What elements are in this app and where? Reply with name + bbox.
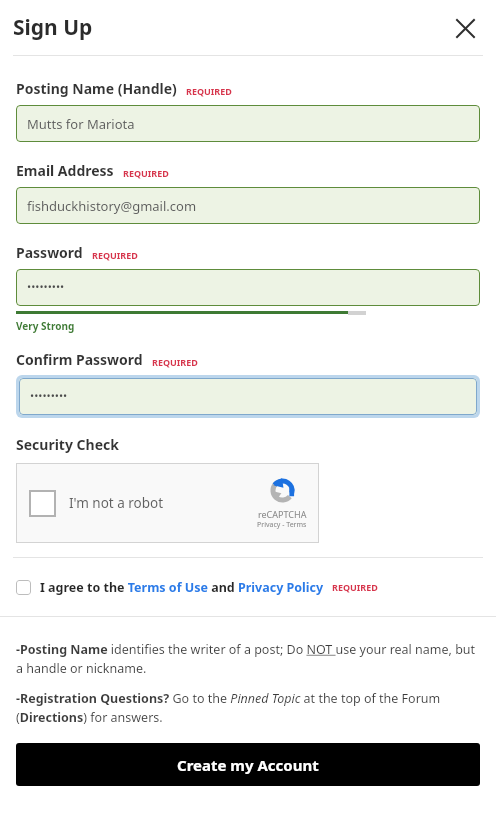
- button[interactable]: Create my Account: [16, 743, 480, 786]
- staticText: Create my Account: [177, 755, 319, 775]
- button[interactable]: Close: [447, 10, 483, 46]
- staticText: Email Address: [16, 161, 114, 180]
- staticText: -Registration Questions? Go to the Pinne…: [16, 690, 480, 726]
- staticText: Posting Name (Handle): [16, 79, 177, 98]
- staticText: •••••••••: [30, 388, 68, 403]
- staticText: REQUIRED: [152, 356, 198, 368]
- staticText: REQUIRED: [186, 85, 232, 97]
- staticText: fishduckhistory@gmail.com: [27, 197, 197, 215]
- button[interactable]: fishduckhistory@gmail.com: [16, 187, 480, 224]
- staticText: REQUIRED: [332, 581, 378, 593]
- button[interactable]: I'm not a robot: [16, 463, 319, 543]
- staticText: I'm not a robot: [69, 494, 164, 512]
- staticText: -Posting Name identifies the writer of a…: [16, 641, 480, 677]
- staticText: Mutts for Mariota: [27, 115, 135, 133]
- button[interactable]: •••••••••: [19, 378, 477, 415]
- staticText: Confirm Password: [16, 350, 143, 369]
- button[interactable]: •••••••••: [16, 269, 480, 306]
- staticText: reCAPTCHA: [258, 508, 307, 520]
- staticText: REQUIRED: [92, 249, 138, 261]
- staticText: Security Check: [16, 435, 119, 454]
- button[interactable]: Mutts for Mariota: [16, 105, 480, 142]
- staticText: Very Strong: [16, 319, 75, 333]
- staticText: Privacy - Terms: [257, 520, 307, 530]
- staticText: Password: [16, 243, 83, 262]
- staticText: REQUIRED: [123, 167, 169, 179]
- staticText: Sign Up: [13, 13, 93, 42]
- button[interactable]: I agree to the Terms of Use and Privacy …: [0, 558, 496, 616]
- staticText: •••••••••: [27, 279, 65, 294]
- staticText: I agree to the Terms of Use and Privacy …: [40, 579, 324, 596]
